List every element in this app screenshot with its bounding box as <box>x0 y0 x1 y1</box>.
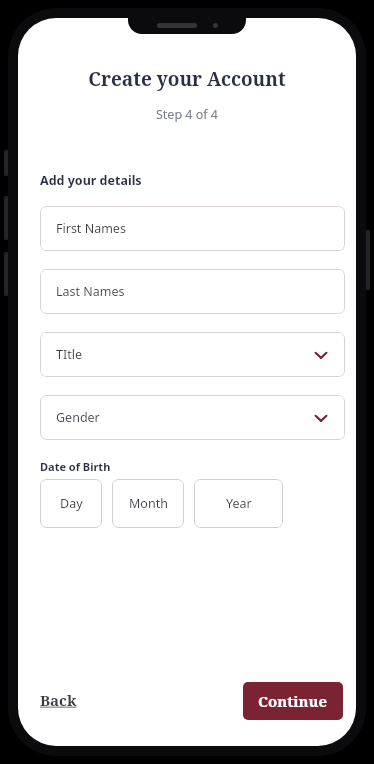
button[interactable]: Month <box>112 479 184 528</box>
button[interactable]: Back <box>38 686 79 714</box>
staticText: Gender <box>56 409 313 426</box>
staticText: Step 4 of 4 <box>18 106 356 123</box>
button[interactable]: Day <box>40 479 102 528</box>
button[interactable]: Continue <box>243 682 343 720</box>
staticText: Add your details <box>40 172 142 189</box>
staticText: Create your Account <box>18 66 356 92</box>
staticText: Continue <box>258 691 328 711</box>
staticText: Month <box>129 495 168 512</box>
button[interactable]: TItle <box>40 332 345 377</box>
button[interactable]: Gender <box>40 395 345 440</box>
staticText: Back <box>40 690 77 710</box>
staticText: First Names <box>56 220 329 237</box>
staticText: Year <box>226 495 252 512</box>
button[interactable]: First Names <box>40 206 345 251</box>
staticText: Last Names <box>56 283 329 300</box>
button[interactable]: Last Names <box>40 269 345 314</box>
staticText: Day <box>60 495 83 512</box>
staticText: Date of Birth <box>40 459 111 474</box>
staticText: TItle <box>56 346 313 363</box>
button[interactable]: Year <box>194 479 283 528</box>
